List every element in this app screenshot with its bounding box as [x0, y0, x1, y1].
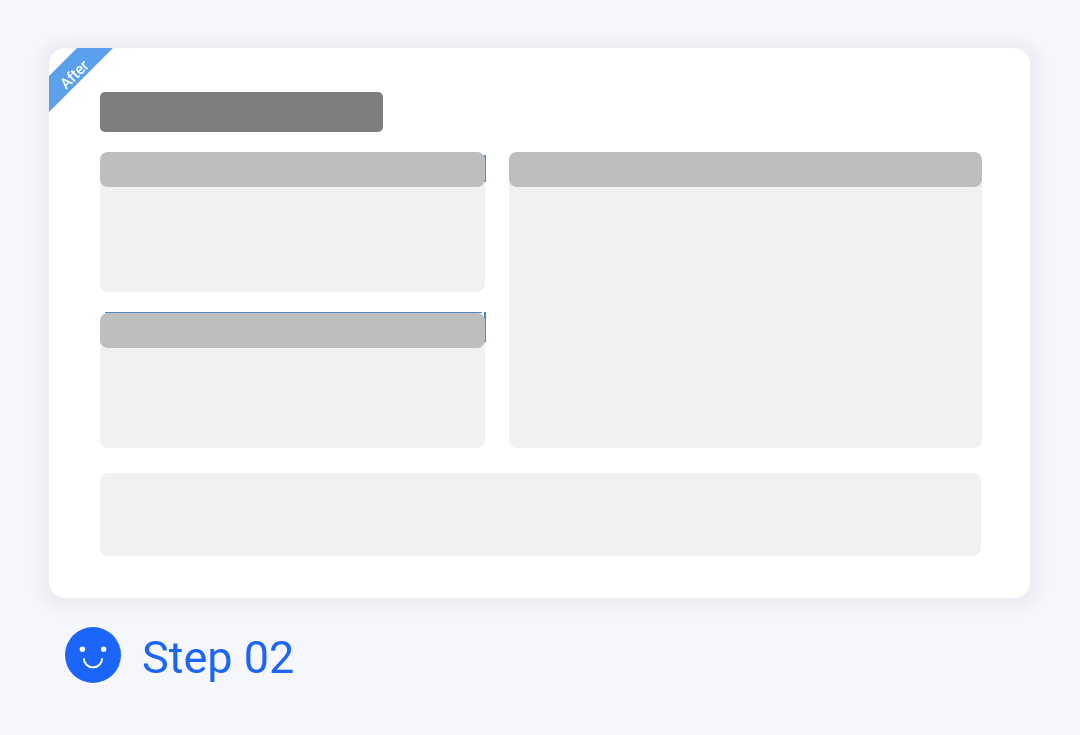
button[interactable]: Step 02 status [65, 627, 295, 683]
other: Step 02 status [65, 627, 121, 683]
button[interactable] [100, 152, 485, 292]
staticText: Step 02 [142, 631, 295, 684]
button[interactable] [100, 313, 485, 448]
staticText: After [56, 57, 92, 93]
button[interactable] [509, 152, 982, 448]
